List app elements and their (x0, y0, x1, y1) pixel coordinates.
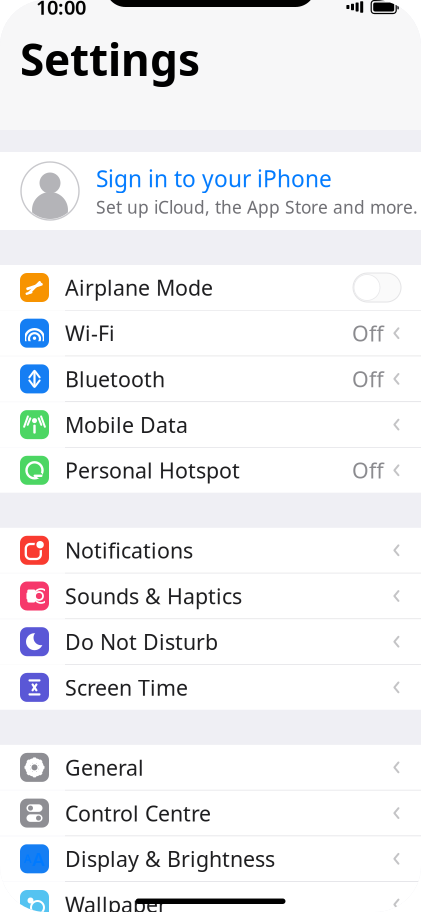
staticText: Screen Time (65, 673, 188, 701)
staticText: A (24, 851, 32, 867)
staticText: Settings (20, 30, 200, 88)
staticText: Notifications (65, 536, 193, 564)
staticText: Off (352, 319, 384, 347)
staticText: Airplane Mode (65, 273, 213, 302)
staticText: Personal Hotspot (65, 456, 240, 484)
staticText: 10:00 (36, 0, 86, 20)
button[interactable]: Bluetooth (0, 356, 421, 401)
staticText: Wallpaper (65, 890, 167, 912)
staticText: Control Centre (65, 799, 211, 827)
button[interactable]: Mobile Data (0, 402, 421, 447)
staticText: Off (352, 456, 384, 484)
button[interactable]: Personal Hotspot (0, 448, 421, 493)
button[interactable]: Wi-Fi (0, 311, 421, 356)
staticText: Off (352, 365, 384, 393)
staticText: Bluetooth (65, 365, 165, 393)
button[interactable]: Airplane Mode (353, 273, 401, 302)
staticText: General (65, 753, 144, 781)
staticText: Display & Brightness (65, 845, 275, 873)
staticText: Do Not Disturb (65, 627, 218, 656)
button[interactable]: Notifications (0, 528, 421, 573)
staticText: Sounds & Haptics (65, 582, 242, 610)
button[interactable]: Sign in to your iPhone (0, 152, 421, 230)
button[interactable]: A (0, 836, 421, 881)
staticText: Wi-Fi (65, 319, 115, 347)
button[interactable]: Sounds & Haptics (0, 573, 421, 618)
staticText: Mobile Data (65, 410, 188, 439)
button[interactable]: Screen Time (0, 665, 421, 710)
button[interactable]: Control Centre (0, 791, 421, 836)
staticText: A (32, 846, 45, 871)
staticText: Sign in to your iPhone (96, 163, 332, 193)
staticText: Set up iCloud, the App Store and more. (96, 195, 418, 218)
button[interactable]: Wallpaper (0, 882, 421, 912)
button[interactable]: Do Not Disturb (0, 619, 421, 664)
button[interactable]: General (0, 745, 421, 790)
